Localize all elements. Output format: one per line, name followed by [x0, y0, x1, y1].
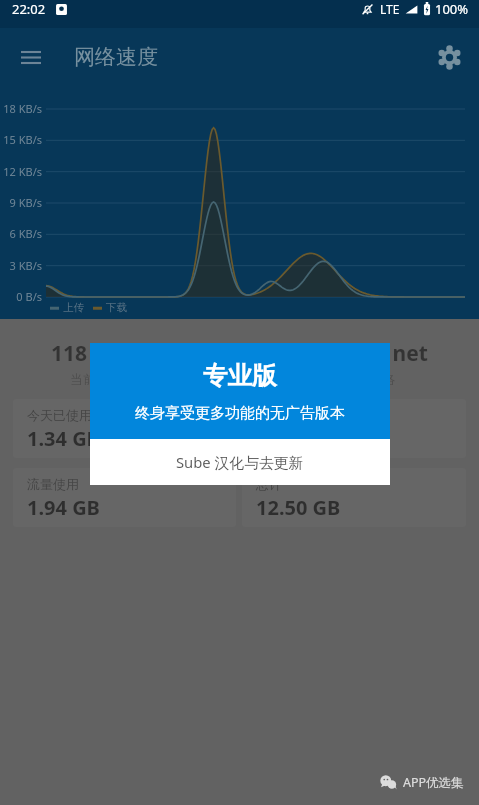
staticText: 118 KB/s [51, 339, 140, 368]
staticText: 12 KB/s [0, 164, 42, 179]
button[interactable]: Sube 汉化与去更新 [90, 439, 390, 485]
staticText: LTE [380, 1, 400, 17]
staticText: 流量使用 [27, 476, 79, 492]
staticText: 100% [435, 0, 469, 18]
staticText: 专业版 [203, 360, 277, 391]
staticText: 6 KB/s [0, 226, 42, 241]
staticText: 下载 [106, 301, 127, 314]
staticText: 总计 [256, 476, 282, 492]
staticText: Wi-Fi net [336, 339, 428, 368]
staticText: 0 B/s [0, 289, 42, 304]
staticText: 终身享受更多功能的无广告版本 [135, 404, 345, 423]
staticText: 9 KB/s [0, 195, 42, 210]
staticText: 22:02 [12, 0, 46, 18]
staticText: 1.94 GB [27, 494, 100, 521]
staticText: 12.50 GB [256, 494, 341, 521]
button[interactable]: 总计 [242, 468, 466, 527]
staticText: 网络 [369, 371, 395, 387]
staticText: 网络速度 [74, 44, 158, 70]
button[interactable]: 今天已使用 [13, 399, 466, 458]
staticText: 15 KB/s [0, 132, 42, 147]
button[interactable]: Wi-Fi net [336, 339, 428, 387]
staticText: 上传 [63, 301, 84, 314]
staticText: 18 KB/s [0, 101, 42, 116]
staticText: Sube 汉化与去更新 [176, 452, 304, 472]
button[interactable]: Settings [433, 41, 465, 73]
staticText: 1.34 GB [27, 425, 100, 452]
staticText: 3 KB/s [0, 258, 42, 273]
button[interactable]: 118 KB/s [51, 339, 140, 387]
staticText: 今天已使用 [27, 407, 92, 423]
button[interactable]: 流量使用 [13, 468, 236, 527]
button[interactable]: Menu [16, 42, 46, 72]
staticText: 当前网速 [70, 371, 122, 387]
staticText: APP优选集 [403, 774, 464, 791]
